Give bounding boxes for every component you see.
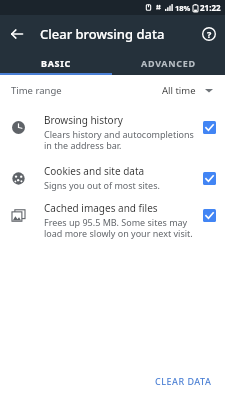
staticText: Frees up 95.5 MB. Some sites may load mo… bbox=[44, 216, 195, 240]
staticText: Clears history and autocompletions in th… bbox=[44, 128, 195, 152]
staticText: ADVANCED bbox=[141, 57, 196, 69]
button[interactable]: Checked bbox=[203, 209, 216, 222]
staticText: 18% bbox=[175, 3, 191, 13]
staticText: ? bbox=[207, 28, 212, 40]
button[interactable]: Checked bbox=[203, 172, 216, 185]
button[interactable]: Cached images and files bbox=[0, 195, 225, 244]
button[interactable]: BASIC bbox=[0, 53, 112, 73]
staticText: Time range bbox=[11, 84, 62, 97]
staticText: Cookies and site data bbox=[44, 164, 145, 178]
staticText: CLEAR DATA bbox=[155, 375, 212, 387]
staticText: Browsing history bbox=[44, 113, 123, 127]
staticText: All time bbox=[162, 84, 196, 97]
button[interactable]: Back bbox=[4, 21, 30, 47]
button[interactable]: Help bbox=[198, 23, 220, 45]
button[interactable]: Cookies and site data bbox=[0, 158, 225, 195]
button[interactable]: Time range bbox=[0, 75, 225, 105]
staticText: Clear browsing data bbox=[40, 25, 165, 43]
button[interactable]: Checked bbox=[203, 121, 216, 134]
button[interactable]: Browsing history bbox=[0, 105, 225, 158]
staticText: 21:22 bbox=[200, 2, 221, 13]
staticText: Cached images and files bbox=[44, 201, 158, 215]
button[interactable]: ADVANCED bbox=[112, 53, 225, 73]
staticText: BASIC bbox=[41, 57, 71, 69]
staticText: Signs you out of most sites. bbox=[44, 179, 160, 191]
button[interactable]: CLEAR DATA bbox=[148, 369, 219, 393]
